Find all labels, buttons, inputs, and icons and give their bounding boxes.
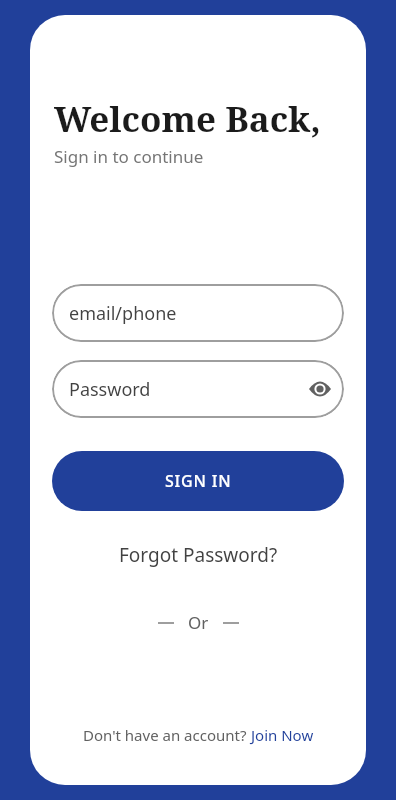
button[interactable]: Password: [52, 360, 344, 418]
button[interactable]: Join Now: [251, 725, 314, 745]
staticText: Join Now: [251, 725, 314, 745]
button[interactable]: email/phone: [52, 284, 344, 342]
button[interactable]: SIGN IN: [52, 451, 344, 511]
staticText: Don't have an account?: [83, 725, 251, 745]
staticText: SIGN IN: [165, 470, 232, 492]
staticText: Forgot Password?: [119, 542, 278, 568]
staticText: email/phone: [69, 301, 177, 326]
staticText: Or: [188, 611, 209, 634]
staticText: Sign in to continue: [54, 145, 204, 168]
button[interactable]: Forgot Password?: [119, 542, 278, 568]
staticText: Password: [69, 377, 151, 402]
staticText: Welcome Back,: [54, 95, 321, 143]
